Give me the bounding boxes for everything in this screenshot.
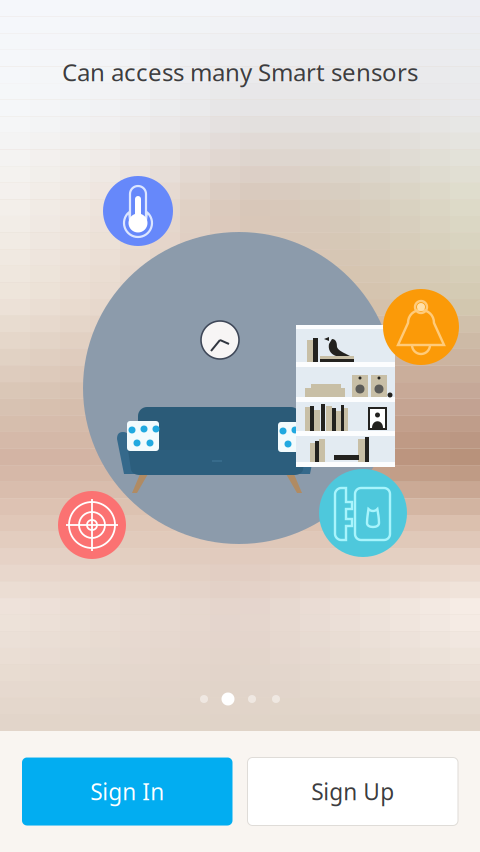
staticText: Sign In bbox=[90, 776, 164, 806]
staticText: Can access many Smart sensors bbox=[62, 56, 418, 88]
button[interactable]: Sign Up bbox=[247, 757, 458, 825]
staticText: Sign Up bbox=[311, 776, 394, 806]
button[interactable]: Sign In bbox=[22, 757, 232, 825]
